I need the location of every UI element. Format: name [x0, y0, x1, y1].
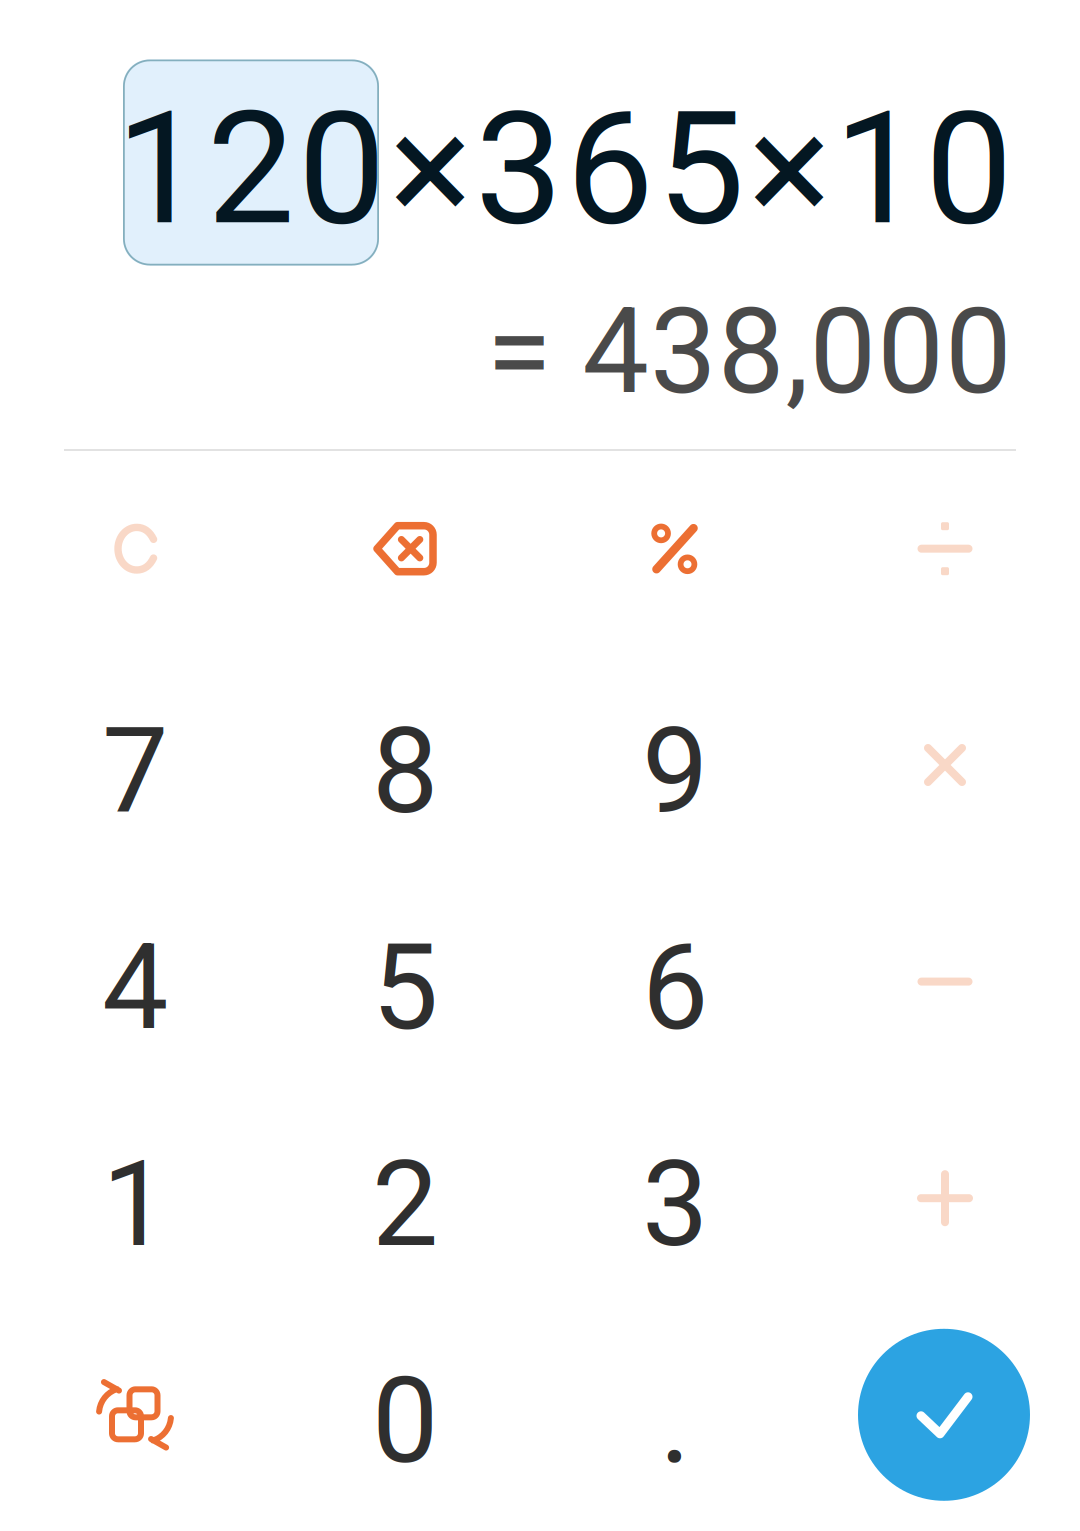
staticText: 0 [372, 1352, 438, 1490]
button[interactable]: Done [814, 1310, 1074, 1520]
staticText: 6 [642, 919, 708, 1057]
button[interactable]: 2 [275, 1100, 535, 1310]
button[interactable]: 5 [275, 883, 535, 1093]
staticText: 1 [102, 1135, 168, 1274]
button[interactable]: Convert units [5, 1310, 265, 1520]
staticText: 5 [372, 919, 438, 1057]
button[interactable]: 8 [275, 666, 535, 876]
staticText: 9 [642, 702, 708, 841]
button[interactable]: . [545, 1316, 805, 1526]
button[interactable]: Clear [7, 444, 267, 654]
button[interactable]: Multiply [815, 660, 1075, 870]
staticText: 2 [372, 1135, 438, 1274]
staticText: 120×365×10 [116, 78, 1013, 260]
button[interactable]: Percent [545, 444, 805, 654]
staticText: 3 [642, 1135, 708, 1274]
button[interactable]: Divide [815, 444, 1075, 654]
button[interactable]: 7 [5, 666, 265, 876]
staticText: 7 [102, 702, 168, 841]
button[interactable]: 0 [275, 1316, 535, 1526]
button[interactable]: 6 [545, 883, 805, 1093]
button[interactable]: 4 [5, 883, 265, 1093]
staticText: = 438,000 [487, 282, 1012, 422]
staticText: 4 [102, 919, 168, 1057]
button[interactable]: Plus [815, 1093, 1075, 1303]
button[interactable]: Backspace [275, 444, 535, 654]
button[interactable]: 3 [545, 1100, 805, 1310]
button[interactable]: Minus [815, 877, 1075, 1087]
button[interactable]: 9 [545, 666, 805, 876]
staticText: 8 [372, 702, 438, 841]
staticText: . [659, 1352, 690, 1490]
button[interactable]: 1 [5, 1100, 265, 1310]
